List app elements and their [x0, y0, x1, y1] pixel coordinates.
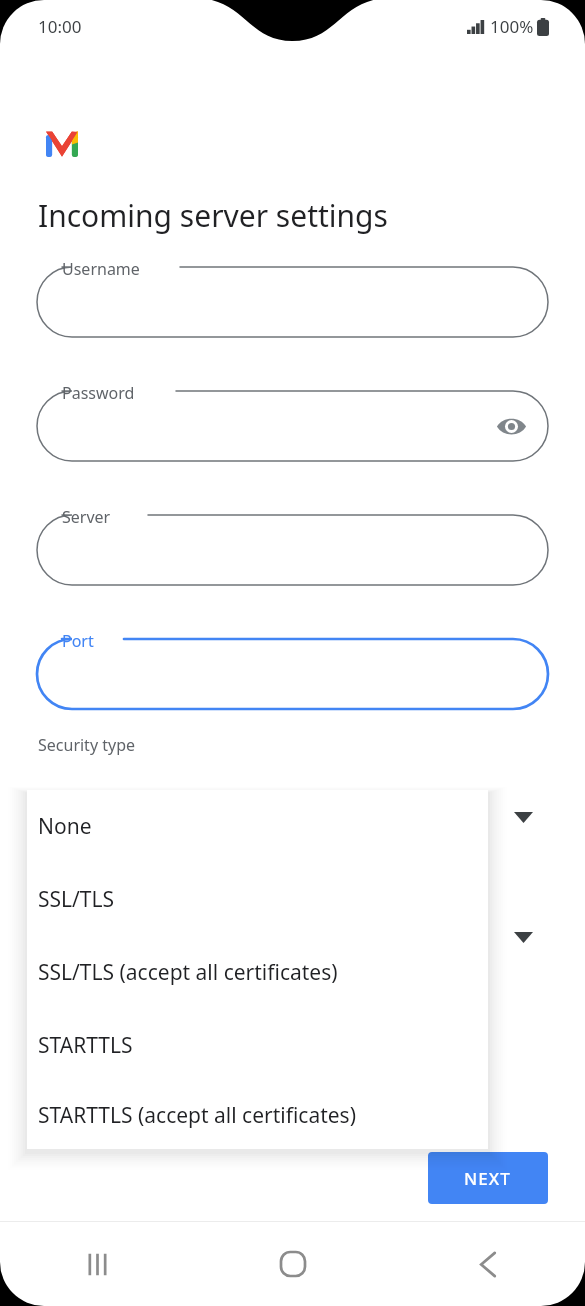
button[interactable]: Authentication type dropdown — [505, 919, 541, 955]
staticText: Port — [62, 630, 94, 652]
button[interactable]: SSL/TLS (accept all certificates) — [27, 936, 488, 1009]
button[interactable]: Recents — [0, 1222, 195, 1306]
button[interactable]: Back — [390, 1222, 585, 1306]
staticText: SSL/TLS (accept all certificates) — [38, 958, 338, 987]
staticText: Server — [62, 506, 111, 528]
staticText: 10:00 — [38, 15, 82, 38]
button[interactable]: Username — [37, 267, 548, 337]
button[interactable]: Security type dropdown — [505, 799, 541, 835]
button[interactable]: STARTTLS (accept all certificates) — [27, 1082, 488, 1149]
button[interactable]: Server — [37, 515, 548, 585]
staticText: Username — [62, 258, 140, 280]
staticText: STARTTLS — [38, 1031, 133, 1060]
button[interactable]: STARTTLS — [27, 1009, 488, 1082]
staticText: Security type — [38, 734, 136, 756]
staticText: SSL/TLS — [38, 885, 115, 914]
staticText: Password — [62, 382, 135, 404]
button[interactable]: Show password — [490, 405, 532, 447]
staticText: STARTTLS (accept all certificates) — [38, 1101, 356, 1130]
button[interactable]: SSL/TLS — [27, 863, 488, 936]
staticText: 100% — [490, 15, 534, 38]
staticText: NEXT — [464, 1167, 512, 1190]
staticText: Incoming server settings — [38, 195, 388, 236]
button[interactable]: None — [27, 790, 488, 863]
button[interactable]: Password — [37, 391, 548, 461]
button[interactable]: NEXT — [428, 1152, 548, 1204]
staticText: None — [38, 812, 92, 841]
button[interactable]: Home — [195, 1222, 390, 1306]
button[interactable]: Port — [37, 639, 548, 709]
